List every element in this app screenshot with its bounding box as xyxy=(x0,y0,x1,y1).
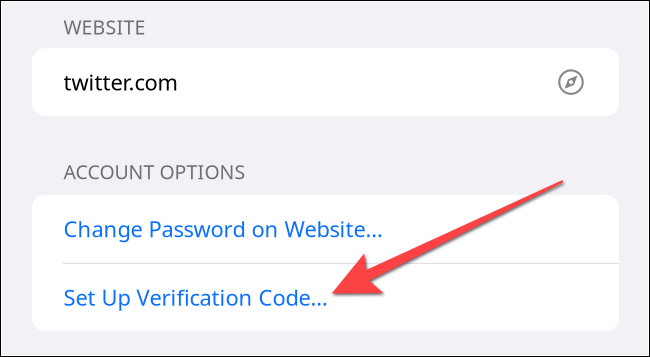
staticText: Change Password on Website… xyxy=(63,214,382,244)
staticText: ACCOUNT OPTIONS xyxy=(63,158,245,185)
staticText: WEBSITE xyxy=(63,14,145,40)
button[interactable]: Change Password on Website… xyxy=(32,195,619,263)
button[interactable]: Set Up Verification Code… xyxy=(32,264,619,331)
button[interactable]: twitter.com xyxy=(32,48,547,116)
button[interactable]: Open website in Safari xyxy=(547,48,595,116)
staticText: Set Up Verification Code… xyxy=(63,282,327,312)
staticText: twitter.com xyxy=(63,67,177,97)
